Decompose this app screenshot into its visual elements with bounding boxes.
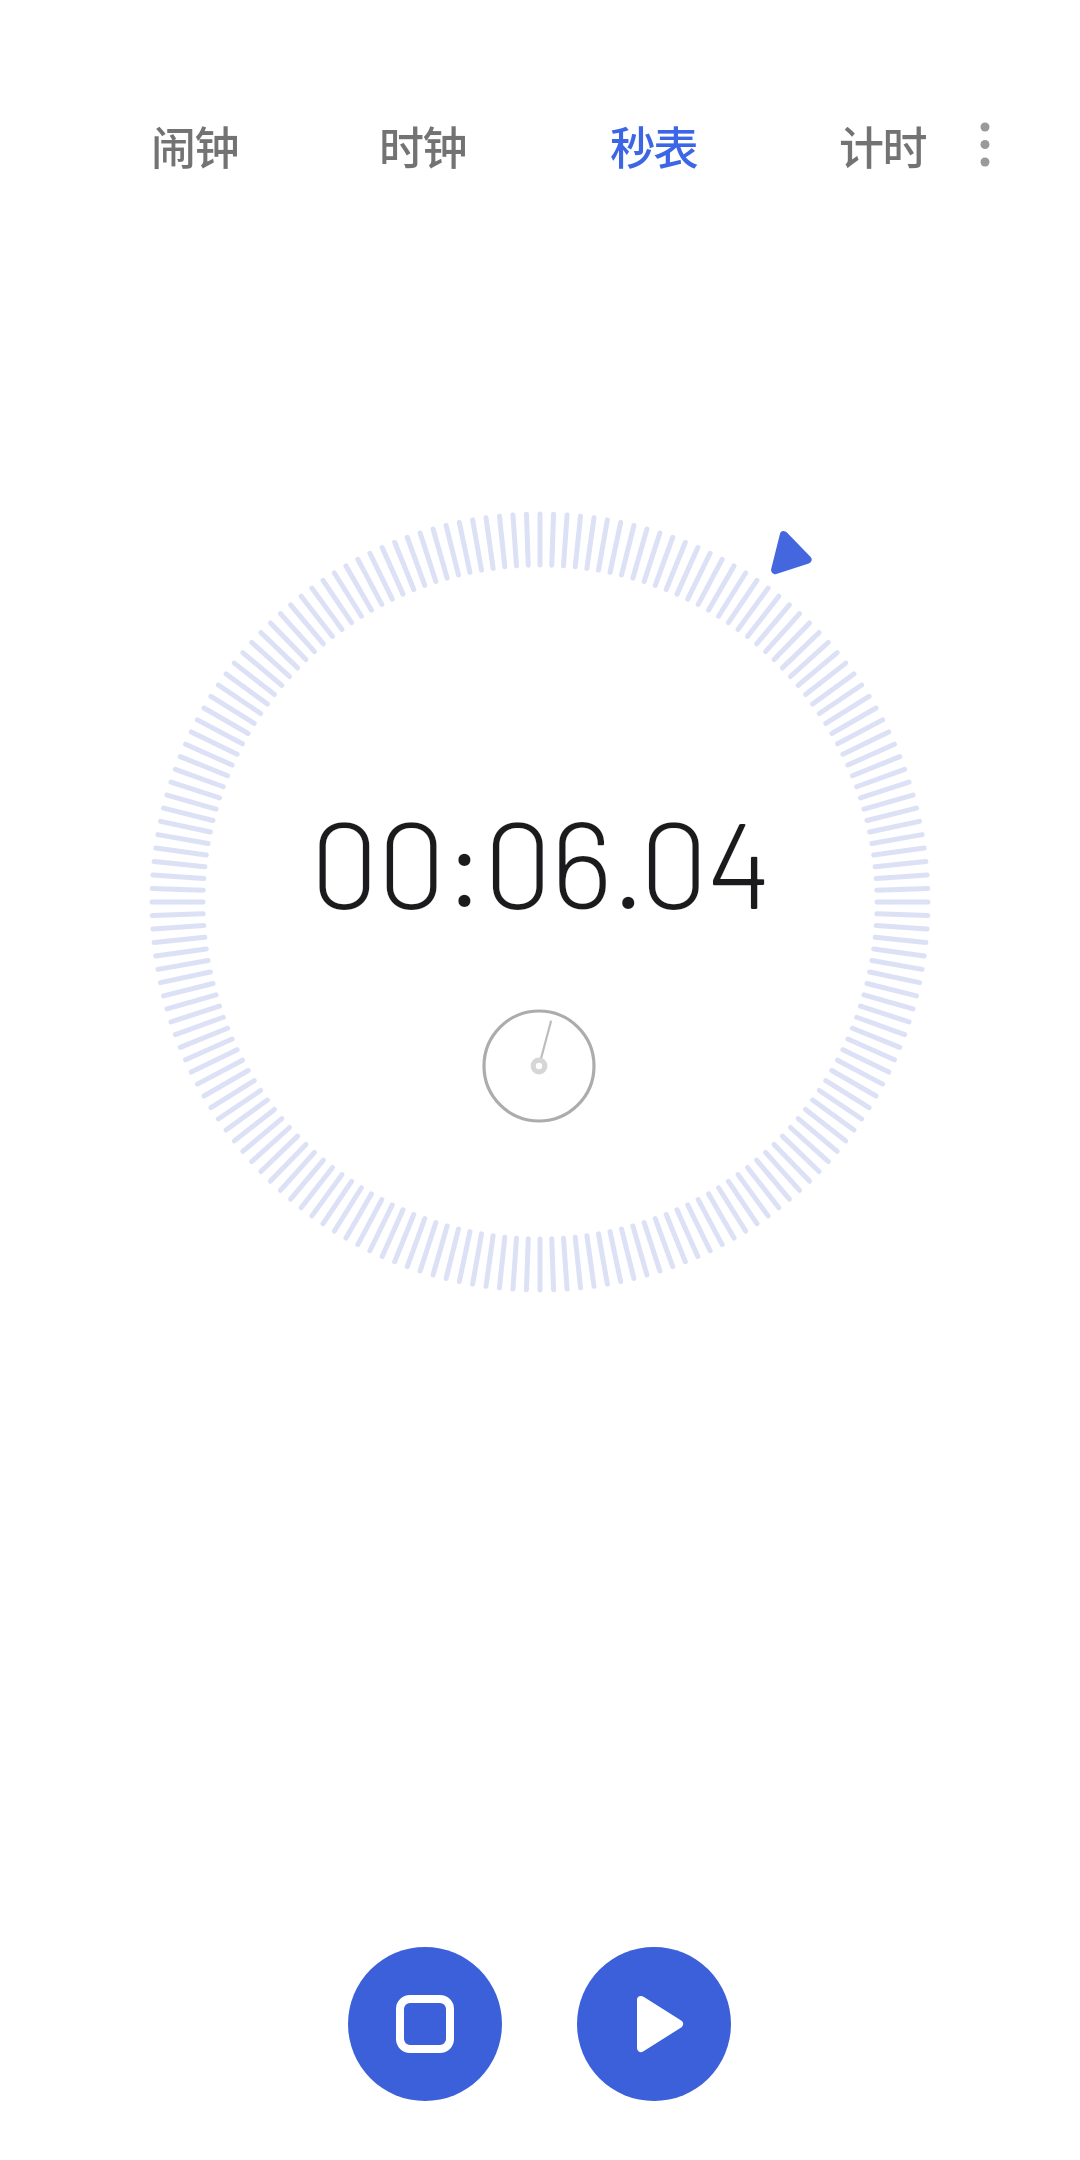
- staticText: 闹钟: [151, 113, 239, 178]
- staticText: 计时: [839, 113, 927, 178]
- button[interactable]: 秒表: [564, 95, 744, 195]
- staticText: 时钟: [379, 113, 467, 178]
- button[interactable]: [955, 105, 1015, 185]
- button[interactable]: 闹钟: [105, 95, 285, 195]
- staticText: 秒表: [610, 113, 698, 178]
- button[interactable]: [348, 1947, 502, 2101]
- button[interactable]: 计时: [793, 95, 973, 195]
- staticText: 00:06.04: [310, 787, 771, 933]
- button[interactable]: 时钟: [333, 95, 513, 195]
- button[interactable]: [577, 1947, 731, 2101]
